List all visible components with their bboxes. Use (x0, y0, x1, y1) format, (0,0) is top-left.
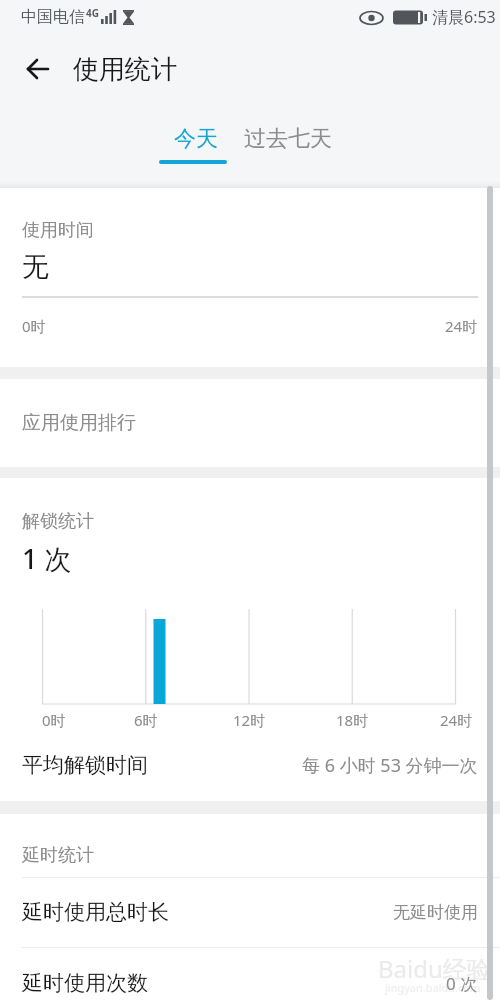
staticText: jingyan.baidu.com (385, 980, 481, 995)
staticText: 使用时间 (22, 219, 94, 242)
staticText: 4G (86, 6, 99, 20)
staticText: 延时使用次数 (22, 970, 148, 996)
staticText: 12时 (233, 710, 266, 730)
staticText: 中国电信 (21, 7, 85, 27)
staticText: 6时 (134, 710, 158, 730)
staticText: 无延时使用 (393, 902, 478, 923)
staticText: 延时使用总时长 (22, 899, 169, 925)
staticText: 应用使用排行 (22, 411, 136, 435)
staticText: 24时 (440, 710, 473, 730)
staticText: Baidu经验 (378, 952, 491, 985)
staticText: 0 次 (446, 972, 478, 995)
button[interactable]: 过去七天 (244, 125, 332, 153)
button[interactable]: 延时使用总时长 (22, 897, 478, 927)
staticText: 解锁统计 (22, 510, 94, 533)
button[interactable]: 延时使用次数 (22, 968, 478, 998)
staticText: 1 次 (22, 540, 72, 574)
staticText: 24时 (445, 316, 478, 336)
button[interactable]: 平均解锁时间 (22, 750, 478, 780)
button[interactable]: 应用使用排行 (0, 379, 500, 467)
button[interactable]: 今天 (174, 125, 218, 153)
staticText: 每 6 小时 53 分钟一次 (302, 753, 478, 778)
button[interactable] (26, 57, 50, 81)
staticText: 使用统计 (73, 53, 177, 86)
staticText: 今天 (174, 125, 218, 153)
staticText: 清晨6:53 (432, 6, 496, 28)
staticText: 0时 (42, 710, 66, 730)
staticText: 平均解锁时间 (22, 752, 148, 778)
staticText: 过去七天 (244, 125, 332, 153)
staticText: 18时 (336, 710, 369, 730)
staticText: 0时 (22, 316, 46, 336)
staticText: 无 (22, 250, 49, 284)
staticText: 延时统计 (22, 844, 94, 867)
